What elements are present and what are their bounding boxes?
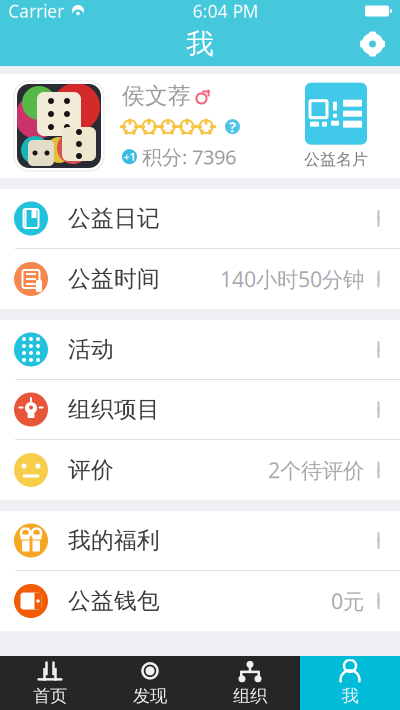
staticText: 我 xyxy=(341,685,358,707)
staticText: 2个待评价 xyxy=(268,456,364,484)
staticText: Carrier xyxy=(8,0,64,22)
staticText: 6:04 PM xyxy=(192,0,258,22)
staticText: 组织项目 xyxy=(68,396,160,423)
button[interactable]: 我的福利 xyxy=(0,511,400,571)
staticText: ? xyxy=(229,117,236,136)
button[interactable]: 公益名片 xyxy=(286,83,386,169)
staticText: 140小时50分钟 xyxy=(220,265,364,293)
button[interactable]: 发现 xyxy=(100,656,200,710)
staticText: 侯文荐 xyxy=(122,82,191,110)
staticText: +1 xyxy=(123,150,135,164)
staticText: 我的福利 xyxy=(68,527,160,554)
staticText: 评价 xyxy=(68,456,114,484)
button[interactable]: 组织 xyxy=(200,656,300,710)
button[interactable]: Settings xyxy=(345,22,400,66)
button[interactable]: 组织项目 xyxy=(0,380,400,440)
staticText: 公益时间 xyxy=(68,265,160,293)
staticText: 首页 xyxy=(33,685,67,707)
staticText: 活动 xyxy=(68,336,114,363)
staticText: 我 xyxy=(186,27,214,61)
button[interactable]: 活动 xyxy=(0,320,400,380)
button[interactable]: 公益日记 xyxy=(0,189,400,249)
button[interactable]: 我 xyxy=(300,656,400,710)
button[interactable]: Rating help xyxy=(217,117,240,136)
button[interactable]: 评价 xyxy=(0,440,400,500)
staticText: 公益日记 xyxy=(68,205,160,232)
button[interactable]: Profile photo xyxy=(14,81,104,171)
staticText: 发现 xyxy=(133,685,167,707)
staticText: 积分: 7396 xyxy=(142,143,236,170)
button[interactable]: 首页 xyxy=(0,656,100,710)
button[interactable]: 公益时间 xyxy=(0,249,400,309)
staticText: 公益名片 xyxy=(304,150,368,169)
staticText: 组织 xyxy=(233,685,267,707)
staticText: 0元 xyxy=(331,587,364,615)
staticText: 公益钱包 xyxy=(68,587,160,615)
button[interactable]: 公益钱包 xyxy=(0,571,400,631)
